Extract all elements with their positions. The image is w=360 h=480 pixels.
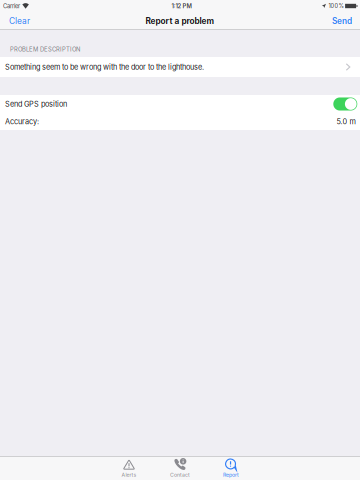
button[interactable]: Contact: [154, 456, 205, 479]
staticText: Send GPS position: [5, 100, 67, 108]
button[interactable]: Something seem to be wrong with the door…: [0, 57, 360, 77]
staticText: Alerts: [121, 472, 136, 478]
staticText: Report: [223, 472, 239, 478]
staticText: Contact: [170, 472, 190, 478]
staticText: Accuracy:: [5, 117, 39, 126]
staticText: 100%: [329, 3, 344, 9]
staticText: PROBLEM DESCRIPTION: [10, 46, 80, 53]
staticText: 5.0 m: [336, 117, 355, 126]
staticText: Send: [332, 16, 352, 26]
button[interactable]: Report: [205, 456, 256, 479]
staticText: Clear: [9, 16, 30, 26]
staticText: Report a problem: [145, 16, 214, 26]
staticText: Carrier: [3, 2, 20, 10]
staticText: Something seem to be wrong with the door…: [5, 63, 204, 71]
staticText: 1:12 PM: [171, 2, 191, 10]
button[interactable]: Clear: [0, 12, 39, 30]
button[interactable]: Send: [324, 12, 360, 30]
button[interactable]: Alerts: [103, 456, 154, 479]
